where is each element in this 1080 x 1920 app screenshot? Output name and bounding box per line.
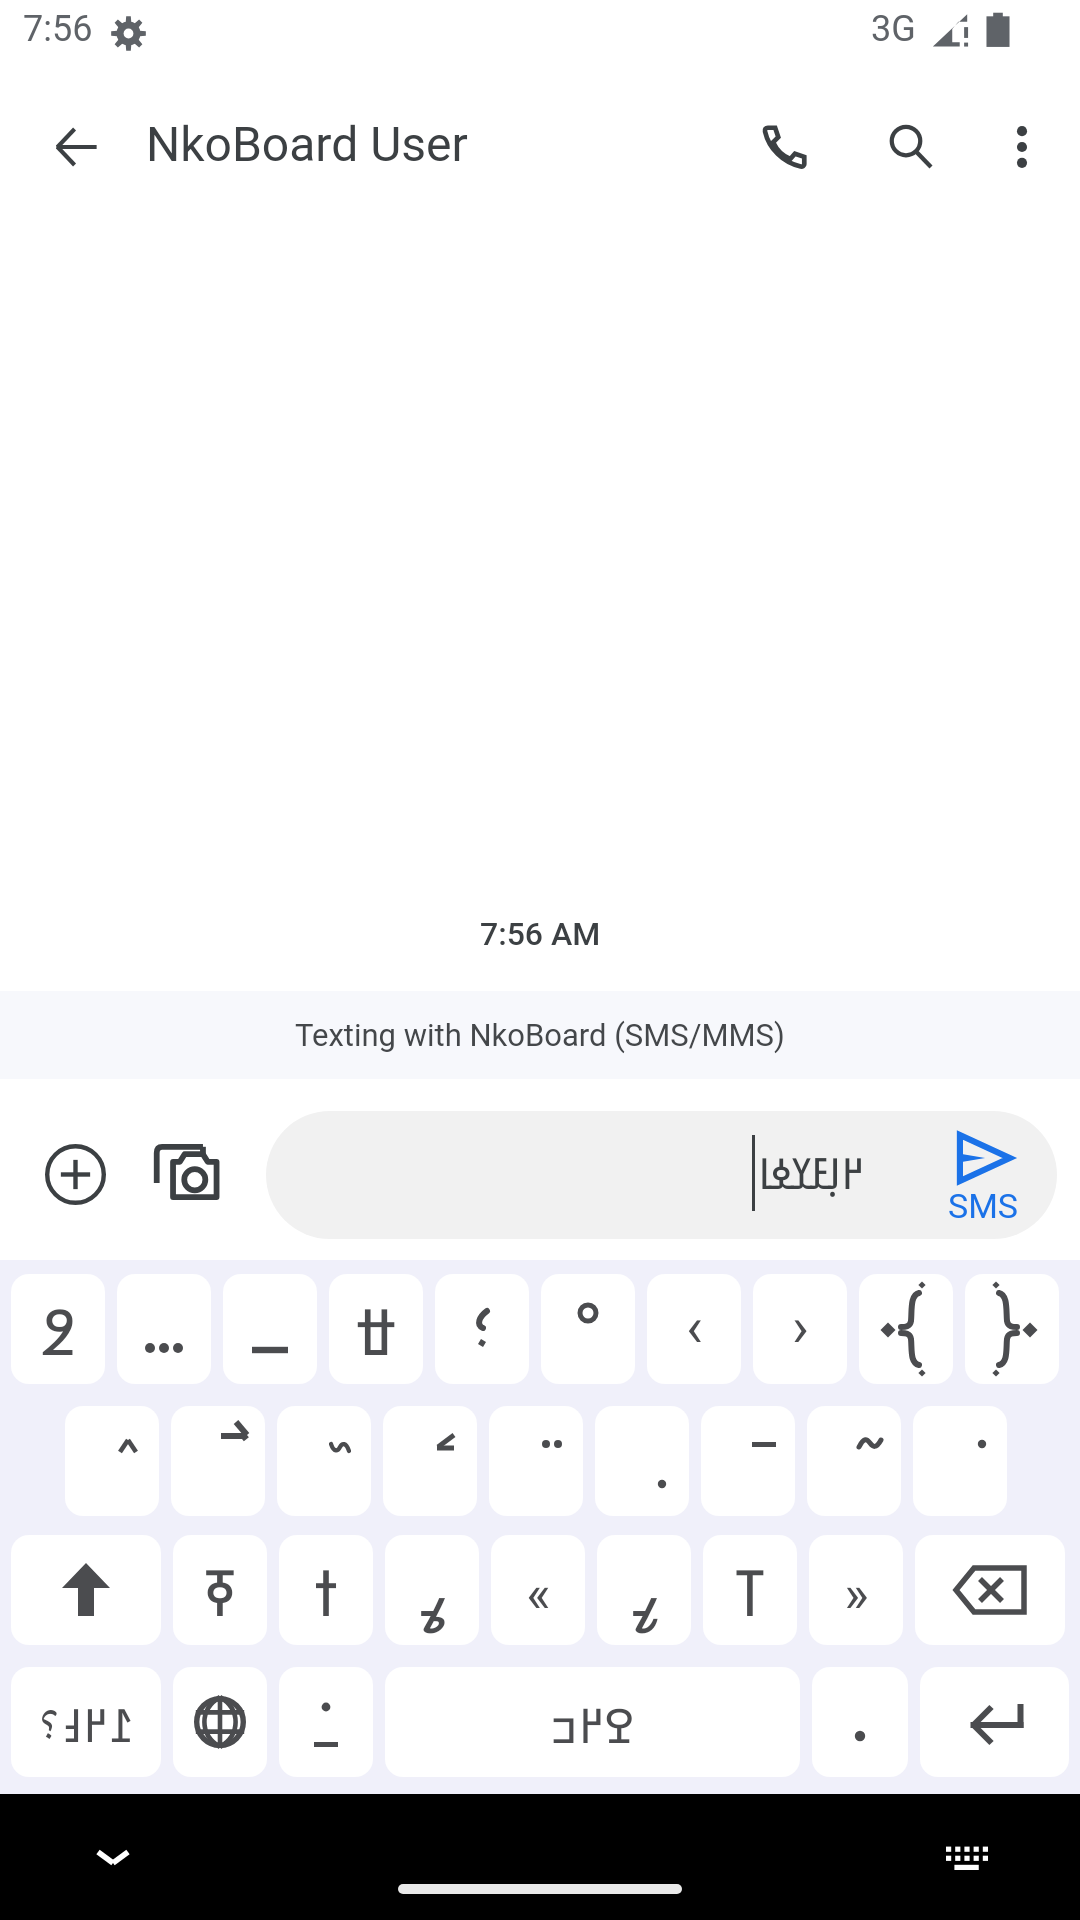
staticText: »	[844, 1564, 869, 1625]
staticText: ߙ	[313, 1548, 339, 1635]
staticText: ߶	[40, 1287, 76, 1374]
button[interactable]	[489, 1406, 583, 1516]
button[interactable]: Add attachment	[37, 1136, 113, 1212]
staticText: ‹	[686, 1294, 703, 1360]
button[interactable]	[435, 1274, 529, 1384]
button[interactable]: Shift	[11, 1535, 161, 1645]
button[interactable]	[965, 1274, 1059, 1384]
button[interactable]: Call	[728, 91, 840, 203]
button[interactable]: Hide keyboard	[73, 1817, 153, 1897]
button[interactable]: ߨ	[597, 1535, 691, 1645]
button[interactable]: ߙ	[279, 1535, 373, 1645]
button[interactable]	[279, 1667, 373, 1777]
staticText: SMS	[948, 1186, 1019, 1226]
staticText: ߁߂߃؟	[39, 1693, 133, 1756]
button[interactable]	[223, 1274, 317, 1384]
staticText: ߂ߊ߲ߓߌߦߊ	[758, 1143, 864, 1202]
staticText: Texting with NkoBoard (SMS/MMS)	[295, 1017, 785, 1053]
button[interactable]	[171, 1406, 265, 1516]
button[interactable]: Backspace	[915, 1535, 1065, 1645]
button[interactable]: More options	[966, 91, 1078, 203]
button[interactable]: Search	[854, 91, 966, 203]
button[interactable]	[812, 1667, 908, 1777]
button[interactable]	[541, 1274, 635, 1384]
staticText: ߧ	[203, 1548, 237, 1635]
button[interactable]	[859, 1274, 953, 1384]
button[interactable]	[913, 1406, 1007, 1516]
staticText: 7:56	[23, 8, 93, 50]
button[interactable]: Camera	[150, 1136, 226, 1212]
button[interactable]: »	[809, 1535, 903, 1645]
button[interactable]: ‹	[647, 1274, 741, 1384]
button[interactable]	[65, 1406, 159, 1516]
staticText: ›	[792, 1294, 809, 1360]
button[interactable]	[807, 1406, 901, 1516]
staticText: 7:56 AM	[480, 915, 601, 953]
button[interactable]: ߩ	[385, 1535, 479, 1645]
button[interactable]: Symbols	[11, 1667, 161, 1777]
button[interactable]: Space	[385, 1667, 800, 1777]
staticText: ߩ	[418, 1548, 447, 1635]
button[interactable]: ߧ	[173, 1535, 267, 1645]
button[interactable]: Back	[26, 91, 126, 203]
button[interactable]: «	[491, 1535, 585, 1645]
button[interactable]	[383, 1406, 477, 1516]
button[interactable]: ߂ߊ߲ߓߌߦߊ	[266, 1111, 1057, 1239]
button[interactable]: Enter	[920, 1667, 1069, 1777]
button[interactable]: Switch keyboard	[927, 1817, 1007, 1897]
button[interactable]	[117, 1274, 211, 1384]
button[interactable]: ߚ	[329, 1274, 423, 1384]
button[interactable]: Change language	[173, 1667, 267, 1777]
staticText: «	[526, 1564, 551, 1625]
staticText: ߚ	[355, 1287, 397, 1374]
button[interactable]	[595, 1406, 689, 1516]
button[interactable]: ›	[753, 1274, 847, 1384]
staticText: ߐ߂ߏ	[551, 1692, 635, 1757]
button[interactable]	[277, 1406, 371, 1516]
staticText: NkoBoard User	[146, 116, 468, 172]
button[interactable]: ߠ	[703, 1535, 797, 1645]
staticText: ߠ	[733, 1548, 767, 1635]
button[interactable]: ߶	[11, 1274, 105, 1384]
staticText: ߨ	[630, 1548, 659, 1635]
button[interactable]	[701, 1406, 795, 1516]
staticText: 3G	[871, 8, 916, 50]
